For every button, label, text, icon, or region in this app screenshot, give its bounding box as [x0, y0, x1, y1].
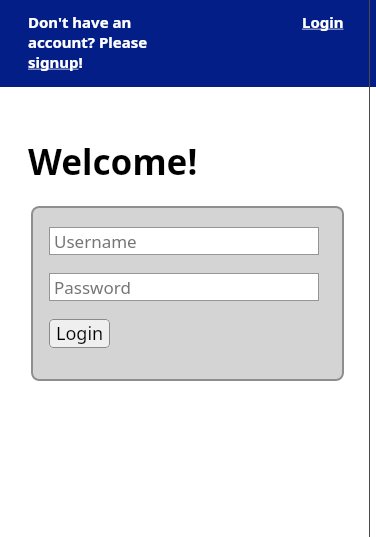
button[interactable]: Username: [49, 227, 319, 255]
button[interactable]: Login: [49, 319, 110, 348]
staticText: Login: [56, 321, 104, 346]
staticText: Login: [302, 12, 344, 32]
staticText: Password: [54, 276, 131, 299]
staticText: Don't have an account? Please signup!: [28, 12, 178, 72]
staticText: Welcome!: [28, 138, 198, 186]
staticText: Username: [54, 230, 137, 253]
button[interactable]: Password: [49, 273, 319, 301]
button[interactable]: Don't have an account? Please signup!: [28, 12, 178, 72]
button[interactable]: Login: [302, 12, 344, 32]
